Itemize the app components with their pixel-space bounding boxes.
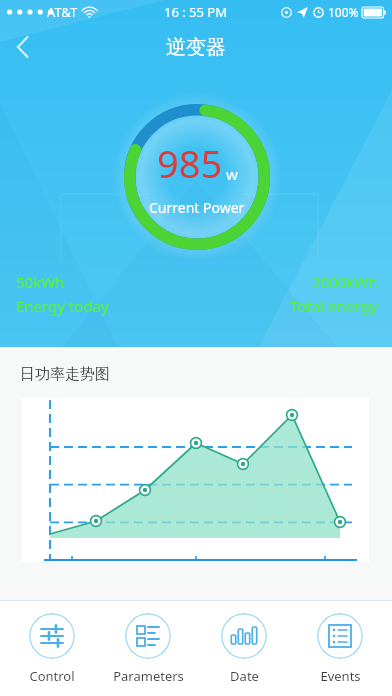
staticText: Current Power: [149, 198, 245, 217]
button[interactable]: Back: [0, 24, 46, 70]
staticText: 2000kWh: [312, 272, 378, 292]
staticText: Total energy: [290, 296, 378, 316]
staticText: Control: [29, 667, 75, 685]
staticText: 100%: [328, 4, 359, 20]
staticText: Parameters: [113, 667, 184, 685]
button[interactable]: Parameters: [104, 601, 192, 685]
staticText: 985: [157, 137, 223, 189]
staticText: 日功率走势图: [20, 365, 110, 384]
button[interactable]: Date: [200, 601, 288, 685]
staticText: Energy today: [16, 296, 109, 316]
button[interactable]: Control: [8, 601, 96, 685]
staticText: Events: [320, 667, 361, 685]
staticText: Date: [230, 667, 259, 685]
staticText: w: [226, 164, 238, 184]
staticText: AT&T: [47, 3, 78, 21]
staticText: 16 : 55 PM: [164, 3, 228, 21]
staticText: 逆变器: [166, 35, 226, 60]
staticText: 50kWh: [16, 272, 65, 292]
button[interactable]: Events: [296, 601, 384, 685]
